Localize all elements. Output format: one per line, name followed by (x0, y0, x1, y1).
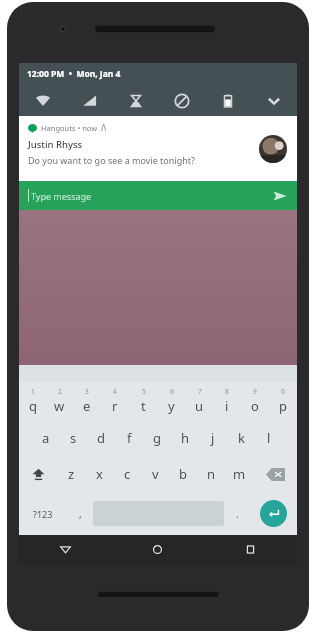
staticText: b (179, 465, 187, 483)
staticText: . (236, 507, 239, 521)
button[interactable]: k (227, 420, 255, 456)
staticText: v (152, 465, 159, 483)
button[interactable]: Mobile data (66, 85, 113, 116)
button[interactable]: 3 (73, 382, 101, 420)
staticText: Type message (31, 190, 92, 202)
staticText: x (96, 465, 103, 483)
staticText: d (97, 429, 105, 447)
button[interactable]: 1 (19, 382, 46, 420)
button[interactable]: 5 (129, 382, 157, 420)
button[interactable]: . (224, 492, 250, 535)
staticText: 9 (253, 387, 257, 396)
button[interactable]: s (59, 420, 87, 456)
button[interactable]: b (169, 456, 197, 492)
staticText: y (168, 397, 175, 415)
staticText: e (83, 397, 91, 415)
button[interactable]: Type message (19, 181, 297, 210)
button[interactable]: Wi-Fi (19, 85, 66, 116)
button[interactable]: c (113, 456, 141, 492)
staticText: g (153, 429, 161, 447)
staticText: 3 (85, 387, 89, 396)
button[interactable]: Cast (113, 85, 159, 116)
staticText: Do you want to go see a movie tonight? (28, 154, 195, 166)
button[interactable]: Expand (251, 85, 297, 116)
staticText: w (54, 397, 65, 415)
staticText: n (207, 465, 216, 483)
button[interactable]: 9 (241, 382, 269, 420)
staticText: Justin Rhyss (28, 138, 83, 151)
staticText: r (112, 397, 118, 415)
staticText: a (42, 429, 50, 447)
button[interactable]: a (32, 420, 59, 456)
staticText: o (251, 397, 259, 415)
button[interactable]: Shift (19, 456, 57, 492)
button[interactable]: j (199, 420, 227, 456)
staticText: 0 (281, 387, 285, 396)
staticText: 2 (58, 387, 62, 396)
button[interactable]: 8 (213, 382, 241, 420)
button[interactable]: Recents (204, 535, 297, 564)
staticText: m (233, 465, 246, 483)
button[interactable]: g (143, 420, 171, 456)
button[interactable]: Battery (205, 85, 251, 116)
button[interactable]: , (67, 492, 93, 535)
staticText: 4 (113, 387, 117, 396)
staticText: 6 (170, 387, 174, 396)
button[interactable]: Home (111, 535, 204, 564)
staticText: , (79, 507, 82, 521)
button[interactable]: ?123 (19, 492, 67, 535)
button[interactable]: h (171, 420, 199, 456)
staticText: 8 (225, 387, 229, 396)
staticText: c (124, 465, 131, 483)
button[interactable]: m (225, 456, 253, 492)
button[interactable]: z (57, 456, 85, 492)
button[interactable]: f (115, 420, 143, 456)
button[interactable]: 0 (269, 382, 297, 420)
staticText: h (181, 429, 190, 447)
button[interactable]: v (141, 456, 169, 492)
staticText: 5 (142, 387, 146, 396)
button[interactable]: Enter (260, 500, 287, 527)
button[interactable]: d (87, 420, 115, 456)
button[interactable]: 6 (157, 382, 185, 420)
button[interactable]: l (255, 420, 283, 456)
staticText: s (70, 429, 77, 447)
staticText: q (29, 397, 37, 415)
staticText: Hangouts • now ᐱ (41, 123, 107, 133)
staticText: i (225, 397, 229, 415)
staticText: j (211, 429, 215, 447)
button[interactable]: Do not disturb (159, 85, 205, 116)
staticText: k (238, 429, 245, 447)
button[interactable]: 2 (46, 382, 73, 420)
staticText: ?123 (33, 508, 53, 520)
button[interactable]: x (85, 456, 113, 492)
staticText: f (127, 429, 132, 447)
button[interactable]: Back (19, 535, 111, 564)
button[interactable]: Backspace (253, 456, 297, 492)
button[interactable]: 7 (185, 382, 213, 420)
staticText: p (279, 397, 287, 415)
staticText: l (267, 429, 271, 447)
staticText: 1 (31, 387, 35, 396)
staticText: u (195, 397, 204, 415)
staticText: t (141, 397, 146, 415)
button[interactable]: n (197, 456, 225, 492)
button[interactable]: Hangouts • now ᐱ (19, 116, 297, 181)
staticText: 12:00 PM • Mon, Jan 4 (27, 68, 121, 80)
button[interactable]: 4 (101, 382, 129, 420)
staticText: 7 (198, 387, 202, 396)
staticText: z (68, 465, 75, 483)
button[interactable]: Send (273, 189, 287, 203)
